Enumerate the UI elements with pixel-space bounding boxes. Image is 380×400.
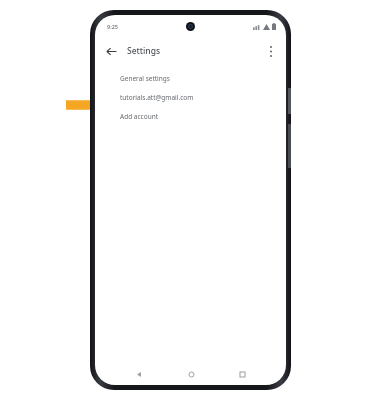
other: Pointer arrow — [66, 94, 118, 116]
button[interactable]: Recent apps — [234, 366, 250, 382]
staticText: tutorials.att@gmail.com — [120, 93, 194, 102]
button[interactable]: Home — [183, 366, 199, 382]
button[interactable]: tutorials.att@gmail.com — [95, 88, 286, 107]
button[interactable]: Back — [131, 366, 147, 382]
button[interactable]: Add account — [95, 107, 286, 126]
staticText: General settings — [120, 74, 170, 83]
staticText: Settings — [127, 45, 161, 57]
staticText: Add account — [120, 112, 159, 121]
button[interactable]: More options — [262, 42, 280, 60]
staticText: 9:25 — [107, 23, 118, 30]
button[interactable]: Back — [101, 41, 121, 61]
button[interactable]: General settings — [95, 69, 286, 88]
